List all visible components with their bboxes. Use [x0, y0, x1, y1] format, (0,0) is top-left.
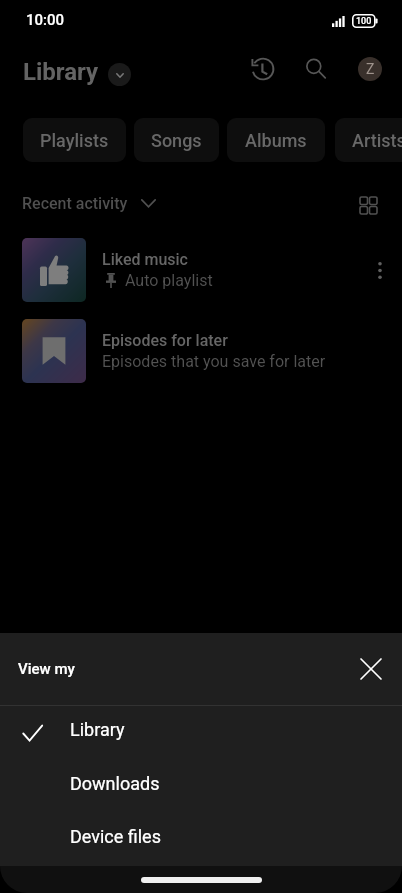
staticText: Recent activity	[22, 194, 128, 213]
button[interactable]: Downloads	[0, 756, 402, 810]
button[interactable]: Recent activity	[22, 194, 156, 213]
button[interactable]: Device files	[0, 809, 402, 863]
staticText: 10:00	[26, 11, 65, 29]
button[interactable]: Close	[349, 647, 393, 691]
button[interactable]: Playlists	[23, 118, 126, 162]
staticText: Artists	[352, 130, 402, 151]
staticText: Device files	[70, 826, 161, 847]
button[interactable]: More options	[358, 248, 402, 292]
button[interactable]: Albums	[227, 118, 325, 162]
staticText: Playlists	[40, 130, 109, 151]
button[interactable]: History	[241, 47, 285, 91]
staticText: Z	[366, 61, 375, 77]
staticText: Library	[23, 58, 99, 86]
button[interactable]: Account	[358, 57, 382, 81]
staticText: Liked music	[102, 250, 188, 269]
button[interactable]: Episodes for later	[0, 310, 402, 391]
staticText: Library	[70, 719, 125, 740]
staticText: Episodes for later	[102, 331, 228, 350]
staticText: Downloads	[70, 773, 160, 794]
button[interactable]: Change library view	[108, 63, 131, 86]
staticText: Auto playlist	[125, 271, 213, 290]
button[interactable]: Search	[294, 47, 338, 91]
button[interactable]: Songs	[134, 118, 219, 162]
button[interactable]: Grid view	[351, 186, 385, 220]
button[interactable]: Liked music	[0, 229, 402, 310]
staticText: View my	[18, 660, 75, 678]
staticText: Albums	[245, 130, 307, 151]
button[interactable]: Library	[0, 702, 402, 756]
staticText: 100	[356, 16, 372, 27]
staticText: Songs	[151, 130, 202, 151]
staticText: Episodes that you save for later	[102, 352, 326, 371]
button[interactable]: Artists	[335, 118, 402, 162]
